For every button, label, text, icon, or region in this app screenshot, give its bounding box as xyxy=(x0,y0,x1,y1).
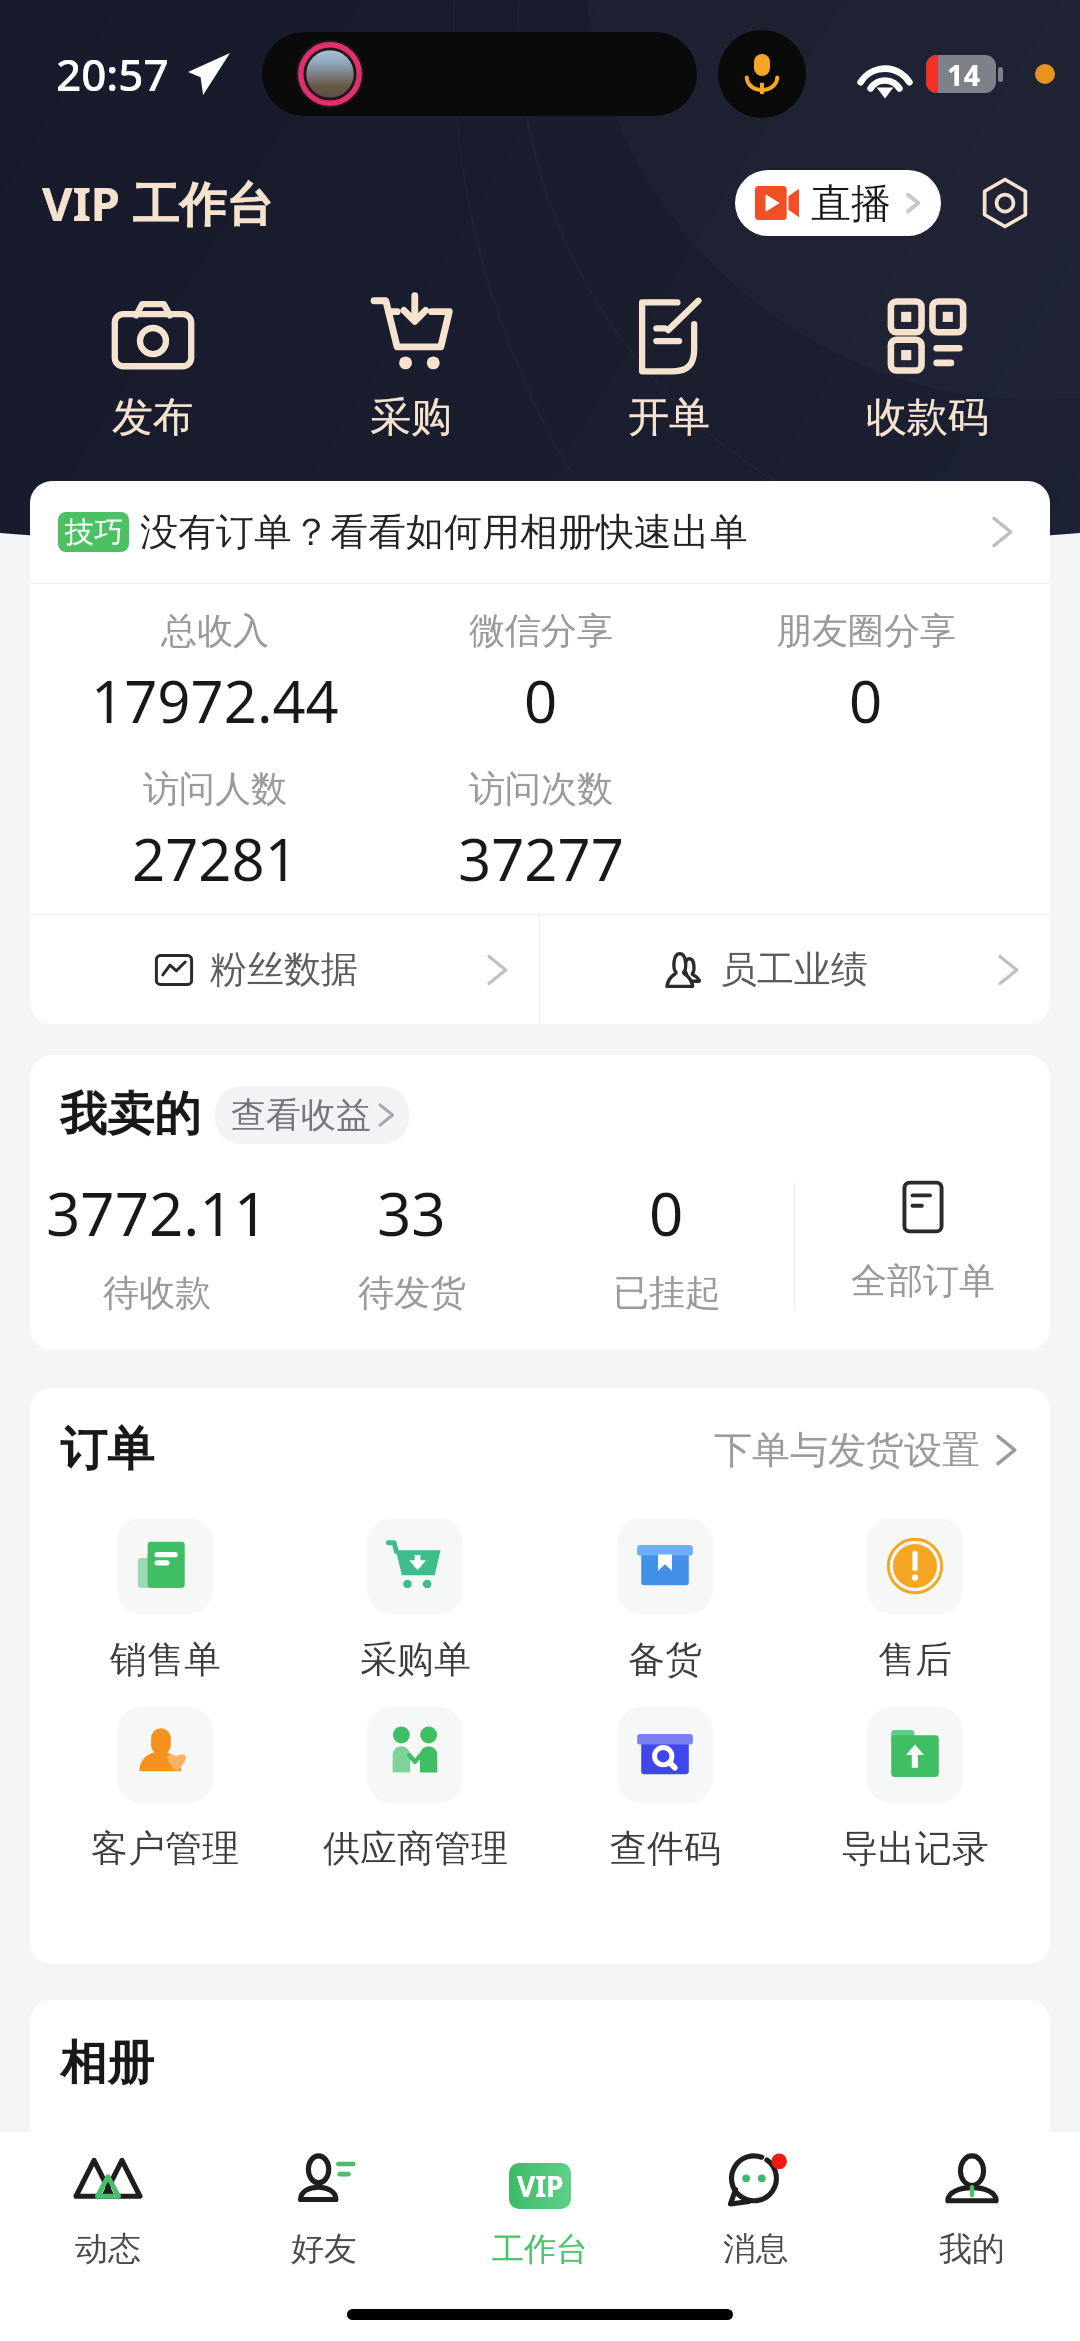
staticText: 20:57 xyxy=(56,44,169,104)
staticText: 销售单 xyxy=(110,1636,221,1683)
button[interactable]: 好友 xyxy=(216,2132,432,2292)
button[interactable]: 采购 xyxy=(282,294,540,444)
staticText: 收款码 xyxy=(866,392,989,444)
staticText: 3772.11 xyxy=(46,1172,268,1254)
staticText: 员工业绩 xyxy=(720,946,868,993)
staticText: 没有订单？看看如何用相册快速出单 xyxy=(140,508,748,556)
staticText: 动态 xyxy=(75,2228,141,2270)
staticText: 供应商管理 xyxy=(323,1825,508,1872)
staticText: 采购单 xyxy=(360,1636,471,1683)
button[interactable]: VIP xyxy=(432,2132,648,2292)
staticText: 访问人数 xyxy=(143,766,287,811)
staticText: 售后 xyxy=(878,1636,952,1683)
staticText: 37277 xyxy=(458,819,624,898)
button[interactable]: 发布 xyxy=(24,294,282,444)
button[interactable]: 备货 xyxy=(540,1518,790,1683)
staticText: 0 xyxy=(649,1172,684,1254)
other: Microphone xyxy=(718,30,806,118)
staticText: 27281 xyxy=(132,819,298,898)
button[interactable]: 收款码 xyxy=(798,294,1056,444)
staticText: 客户管理 xyxy=(91,1825,239,1872)
button[interactable]: 33 xyxy=(284,1172,539,1315)
staticText: 我卖的 xyxy=(60,1085,201,1144)
staticText: 发布 xyxy=(112,392,194,444)
staticText: 查看收益 xyxy=(231,1093,371,1137)
staticText: 待发货 xyxy=(358,1270,466,1315)
staticText: 订单 xyxy=(60,1420,154,1479)
staticText: 开单 xyxy=(628,392,710,444)
staticText: VIP 工作台 xyxy=(42,171,274,235)
button[interactable]: 客户管理 xyxy=(40,1707,290,1872)
staticText: 已挂起 xyxy=(613,1270,721,1315)
staticText: 好友 xyxy=(291,2228,357,2270)
staticText: 总收入 xyxy=(161,608,269,653)
staticText: 消息 xyxy=(723,2228,789,2270)
button[interactable]: 查看收益 xyxy=(215,1086,409,1144)
button[interactable]: 售后 xyxy=(790,1518,1040,1683)
button[interactable]: 消息 xyxy=(648,2132,864,2292)
staticText: 33 xyxy=(377,1172,446,1254)
staticText: 我的 xyxy=(939,2228,1005,2270)
staticText: 查件码 xyxy=(610,1825,721,1872)
staticText: 备货 xyxy=(628,1636,702,1683)
staticText: 相册 xyxy=(60,2034,154,2093)
button[interactable]: 全部订单 xyxy=(795,1172,1050,1320)
staticText: 0 xyxy=(849,661,883,740)
staticText: 微信分享 xyxy=(469,608,613,653)
staticText: 17972.44 xyxy=(91,661,339,740)
staticText: 工作台 xyxy=(492,2229,588,2269)
button[interactable]: 0 xyxy=(539,1172,794,1315)
staticText: 待收款 xyxy=(103,1270,211,1315)
button[interactable]: 员工业绩 xyxy=(540,915,1050,1024)
staticText: 朋友圈分享 xyxy=(776,608,956,653)
staticText: 技巧 xyxy=(65,514,123,551)
button[interactable]: 我的 xyxy=(864,2132,1080,2292)
staticText: 直播 xyxy=(811,178,891,228)
staticText: VIP xyxy=(517,2167,564,2205)
staticText: 访问次数 xyxy=(469,766,613,811)
staticText: 下单与发货设置 xyxy=(714,1426,980,1474)
button[interactable]: 下单与发货设置 xyxy=(714,1426,1026,1474)
button[interactable]: 直播 xyxy=(735,170,941,236)
staticText: 全部订单 xyxy=(851,1258,995,1303)
staticText: 粉丝数据 xyxy=(210,946,358,993)
button[interactable]: 3772.11 xyxy=(30,1172,284,1315)
button[interactable]: 动态 xyxy=(0,2132,216,2292)
button[interactable]: 导出记录 xyxy=(790,1707,1040,1872)
button[interactable]: Settings xyxy=(977,175,1033,231)
button[interactable]: 查件码 xyxy=(540,1707,790,1872)
staticText: 采购 xyxy=(370,392,452,444)
staticText: 0 xyxy=(524,661,558,740)
button[interactable]: 供应商管理 xyxy=(290,1707,540,1872)
staticText: 14 xyxy=(947,55,981,93)
staticText: 导出记录 xyxy=(841,1825,989,1872)
button[interactable]: 开单 xyxy=(540,294,798,444)
button[interactable]: 采购单 xyxy=(290,1518,540,1683)
button[interactable]: 技巧 xyxy=(30,481,1050,583)
button[interactable]: 粉丝数据 xyxy=(30,915,539,1024)
button[interactable]: 销售单 xyxy=(40,1518,290,1683)
